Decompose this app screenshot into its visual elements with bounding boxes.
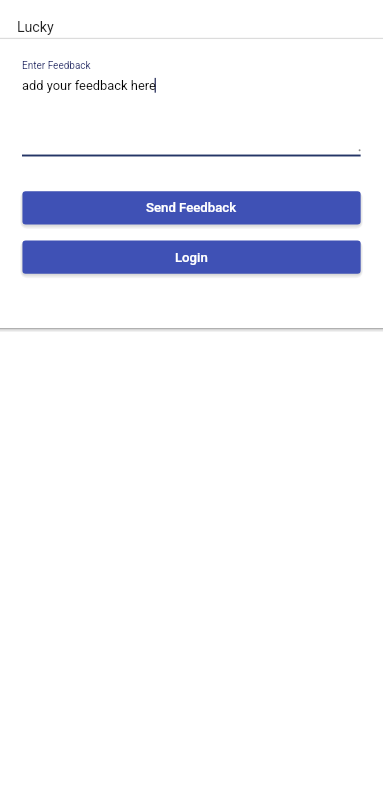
button[interactable]: Login bbox=[22, 241, 360, 274]
staticText: Login bbox=[175, 250, 208, 265]
button[interactable]: Send Feedback bbox=[22, 191, 360, 224]
staticText: add your feedback here bbox=[22, 78, 156, 93]
staticText: Send Feedback bbox=[146, 200, 237, 215]
button[interactable]: Lucky bbox=[0, 0, 383, 38]
staticText: Lucky bbox=[17, 19, 54, 36]
staticText: Enter Feedback bbox=[22, 60, 91, 72]
